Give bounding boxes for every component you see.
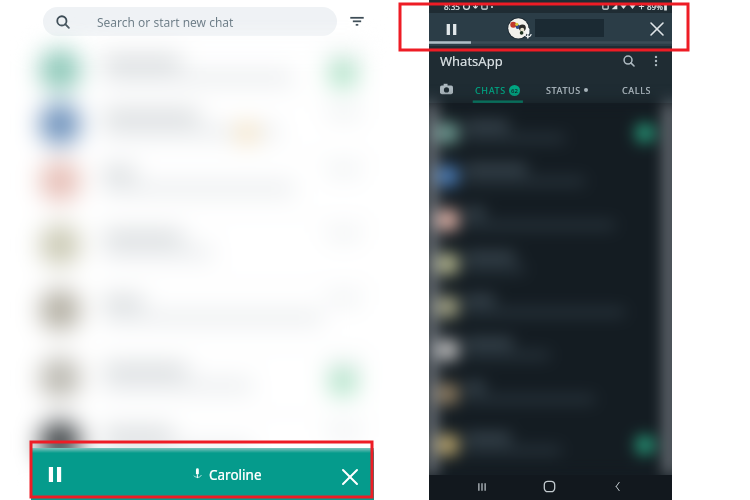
button[interactable]: Close xyxy=(339,466,361,488)
staticText: WhatsApp xyxy=(440,52,503,70)
button[interactable]: Pause xyxy=(31,448,374,500)
staticText: STATUS xyxy=(546,84,581,96)
staticText: 8:35 xyxy=(444,1,460,12)
button[interactable]: More options xyxy=(644,49,668,73)
staticText: CALLS xyxy=(622,84,652,96)
button[interactable]: Search xyxy=(617,49,641,73)
button[interactable]: CHATS xyxy=(463,76,532,103)
button[interactable]: STATUS xyxy=(532,76,602,103)
staticText: Caroline xyxy=(209,466,262,484)
button[interactable]: Home xyxy=(538,475,561,498)
button[interactable]: Close xyxy=(645,17,669,41)
button[interactable]: Pause xyxy=(439,17,463,41)
staticText: CHATS xyxy=(475,84,506,96)
button[interactable]: Back xyxy=(606,475,629,498)
button[interactable]: Camera xyxy=(429,76,463,103)
staticText: Search or start new chat xyxy=(97,14,234,30)
staticText: 62 xyxy=(511,87,518,95)
button[interactable]: Filter chats xyxy=(343,7,371,35)
button[interactable]: Pause xyxy=(44,463,66,485)
button[interactable]: CALLS xyxy=(602,76,672,103)
button[interactable]: Recents xyxy=(470,475,493,498)
button[interactable]: Caroline xyxy=(209,466,262,484)
staticText: 89% xyxy=(647,1,663,12)
button[interactable]: Search or start new chat xyxy=(43,7,337,36)
